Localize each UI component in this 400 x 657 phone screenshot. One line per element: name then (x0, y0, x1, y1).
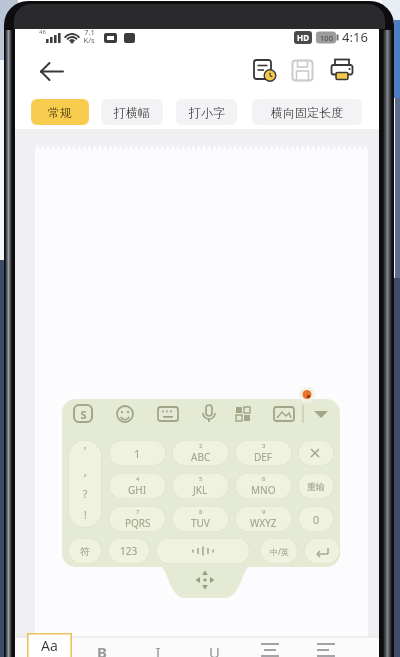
button[interactable]: 打横幅 (101, 99, 163, 125)
staticText: , (84, 465, 87, 479)
staticText: 7.1 (84, 27, 95, 36)
staticText: DEF (254, 450, 273, 464)
button[interactable]: 6 (235, 473, 292, 499)
staticText: 3 (262, 442, 266, 450)
button[interactable]: U (204, 641, 224, 657)
staticText: ABC (191, 450, 211, 464)
staticText: I (155, 642, 161, 657)
button[interactable] (156, 538, 250, 564)
staticText: 1 (134, 446, 141, 461)
staticText: 9 (262, 508, 266, 516)
button[interactable]: 7 (109, 506, 166, 532)
staticText: 中/英 (270, 546, 289, 557)
button[interactable]: 8 (172, 506, 229, 532)
button[interactable]: 常规 (31, 99, 89, 125)
staticText: Aa (41, 636, 58, 655)
staticText: 6 (262, 475, 266, 483)
button[interactable]: ' (68, 440, 102, 528)
button[interactable]: 横向固定长度 (252, 99, 362, 125)
button[interactable]: 9 (235, 506, 292, 532)
button[interactable] (330, 58, 354, 83)
button[interactable]: 打小字 (176, 99, 237, 125)
button[interactable]: 5 (172, 473, 229, 499)
staticText: 5 (199, 475, 203, 483)
button[interactable]: Aa (27, 633, 72, 657)
button[interactable]: 0 (298, 506, 334, 532)
staticText: MNO (251, 483, 276, 497)
button[interactable]: B (92, 641, 112, 657)
staticText: 100 (320, 33, 333, 43)
staticText: 123 (120, 544, 138, 558)
staticText: U (209, 642, 220, 657)
staticText: 横向固定长度 (271, 105, 343, 120)
button[interactable]: I (148, 641, 168, 657)
staticText: ' (84, 444, 87, 458)
button[interactable]: 中/英 (260, 538, 298, 564)
staticText: 重输 (307, 481, 325, 492)
staticText: 2 (199, 442, 203, 450)
staticText: HD (297, 32, 309, 43)
button[interactable]: 4 (109, 473, 166, 499)
staticText: 46 (39, 28, 46, 36)
staticText: GHI (128, 483, 147, 497)
button[interactable]: 3 (235, 440, 292, 466)
staticText: JKL (193, 483, 208, 497)
staticText: 0 (313, 512, 320, 527)
staticText: S (80, 407, 87, 422)
staticText: B (97, 642, 107, 657)
button[interactable] (304, 538, 340, 564)
button[interactable]: 重输 (298, 473, 334, 499)
staticText: 打小字 (189, 105, 225, 120)
staticText: 打横幅 (114, 105, 150, 120)
staticText: TUV (191, 516, 210, 530)
button[interactable] (32, 56, 72, 86)
staticText: 4:16 (342, 28, 368, 46)
staticText: ! (84, 508, 87, 522)
button[interactable]: 符 (68, 538, 102, 564)
staticText: 7 (136, 508, 140, 516)
button[interactable] (291, 59, 314, 82)
staticText: 符 (80, 545, 90, 558)
staticText: PQRS (125, 516, 151, 530)
staticText: K/s (83, 35, 95, 44)
button[interactable]: 123 (108, 538, 150, 564)
button[interactable] (155, 558, 255, 602)
staticText: 4 (136, 475, 140, 483)
staticText: WXYZ (250, 516, 277, 530)
button[interactable]: 2 (172, 440, 229, 466)
staticText: 常规 (48, 105, 72, 120)
button[interactable] (252, 58, 278, 83)
button[interactable] (298, 440, 334, 466)
staticText: 8 (199, 508, 203, 516)
button[interactable]: 1 (109, 440, 166, 466)
staticText: ? (83, 487, 88, 501)
